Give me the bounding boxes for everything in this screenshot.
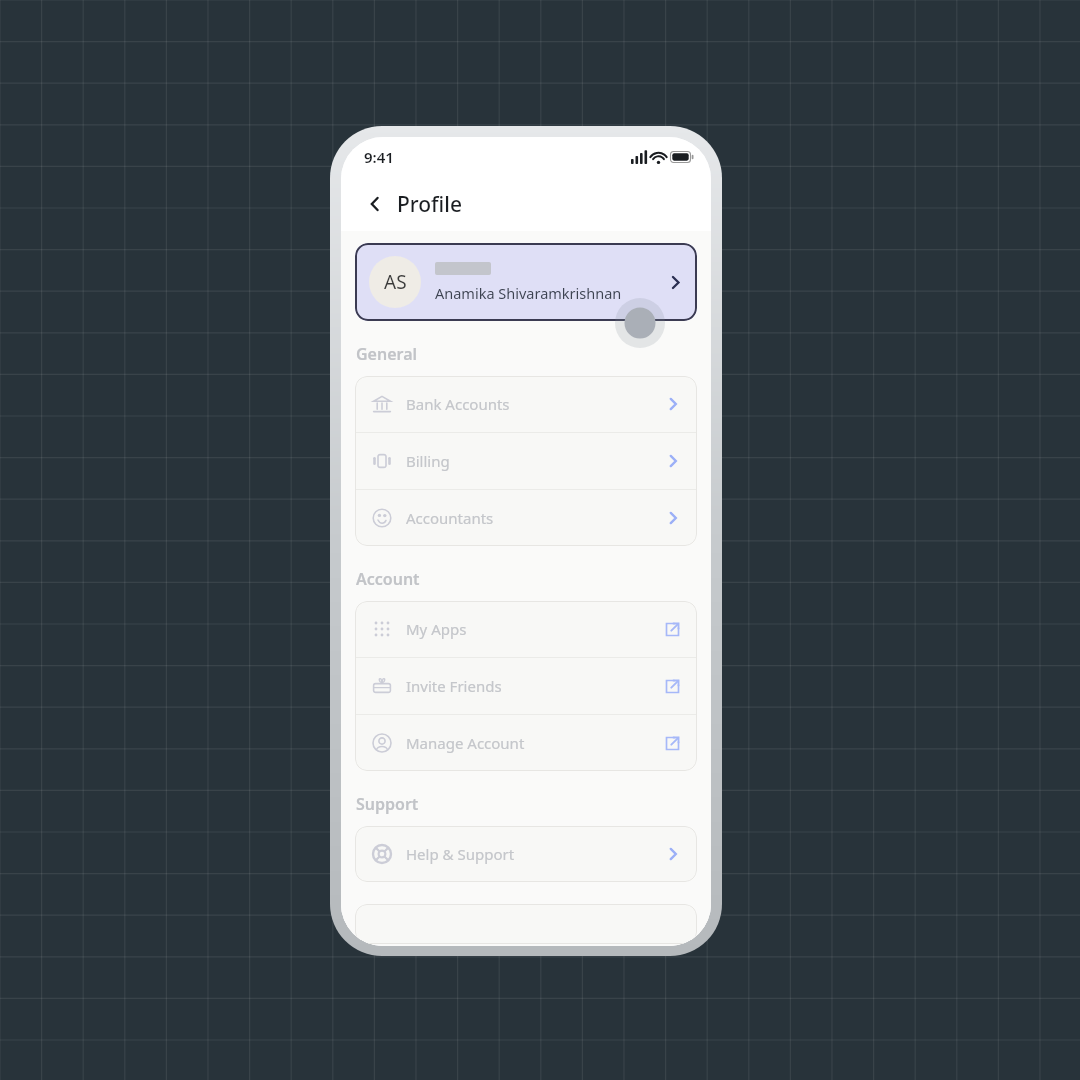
staticText: 9:41 — [364, 147, 394, 167]
staticText: Account — [356, 568, 420, 590]
button[interactable]: Billing — [355, 433, 697, 489]
staticText: Accountants — [406, 508, 494, 528]
staticText: Support — [356, 793, 419, 815]
button[interactable]: AS — [355, 243, 697, 321]
button[interactable]: Invite Friends — [355, 658, 697, 714]
staticText: Anamika Shivaramkrishnan — [435, 283, 622, 303]
staticText: Billing — [406, 451, 450, 471]
button[interactable]: Help & Support — [355, 826, 697, 882]
button[interactable]: Accountants — [355, 490, 697, 546]
staticText: Help & Support — [406, 844, 515, 864]
button[interactable] — [355, 904, 697, 944]
staticText: Profile — [397, 190, 462, 219]
staticText: Bank Accounts — [406, 394, 510, 414]
staticText: General — [356, 343, 418, 365]
staticText: AS — [384, 269, 407, 295]
button[interactable]: Bank Accounts — [355, 376, 697, 432]
staticText: My Apps — [406, 619, 467, 639]
button[interactable]: Manage Account — [355, 715, 697, 771]
button[interactable]: Back — [362, 191, 388, 217]
staticText: Manage Account — [406, 733, 525, 753]
staticText: Invite Friends — [406, 676, 502, 696]
button[interactable]: My Apps — [355, 601, 697, 657]
